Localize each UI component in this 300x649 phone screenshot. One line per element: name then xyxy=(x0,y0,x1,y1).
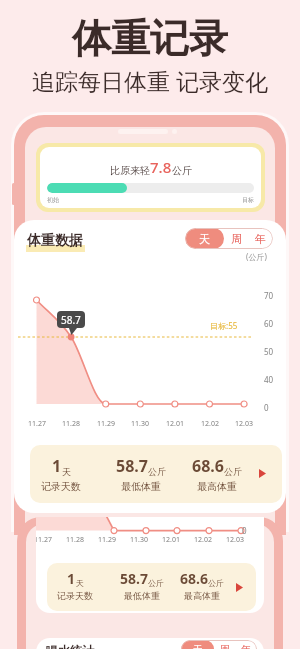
staticText: 天 xyxy=(76,578,84,588)
staticText: 11.28 xyxy=(66,535,84,545)
staticText: 公斤 xyxy=(208,578,224,588)
staticText: 体重数据 xyxy=(27,232,83,250)
staticText: 11.30 xyxy=(131,419,149,429)
staticText: 周 xyxy=(220,643,230,649)
staticText: 年 xyxy=(255,232,266,246)
staticText: 公斤 xyxy=(172,164,192,177)
staticText: 11.29 xyxy=(97,419,115,429)
staticText: 70 xyxy=(264,290,274,301)
staticText: 50 xyxy=(264,346,274,357)
button[interactable]: 年 xyxy=(235,640,256,649)
staticText: 40 xyxy=(264,374,274,385)
staticText: 11.30 xyxy=(130,535,148,545)
staticText: 天 xyxy=(193,643,203,649)
staticText: 12.01 xyxy=(162,535,180,545)
staticText: 11.29 xyxy=(98,535,116,545)
staticText: 天 xyxy=(62,466,71,477)
staticText: 周 xyxy=(231,232,242,246)
staticText: 最低体重 xyxy=(121,480,161,493)
button[interactable]: 周 xyxy=(214,640,235,649)
staticText: 11.27 xyxy=(28,419,46,429)
staticText: 初始 xyxy=(47,196,59,204)
staticText: 追踪每日体重 记录变化 xyxy=(0,65,300,96)
staticText: 60 xyxy=(264,318,274,329)
staticText: 0 xyxy=(264,402,269,413)
staticText: 7.8 xyxy=(150,157,172,177)
staticText: 最高体重 xyxy=(184,590,220,601)
staticText: 68.6 xyxy=(180,569,208,588)
button[interactable]: 1 xyxy=(30,445,282,503)
button[interactable]: 天 xyxy=(181,640,214,649)
staticText: 12.02 xyxy=(201,419,219,429)
staticText: (公斤) xyxy=(246,251,267,262)
staticText: 11.28 xyxy=(62,419,80,429)
button[interactable]: 天 xyxy=(185,228,224,249)
staticText: 公斤 xyxy=(148,578,164,588)
staticText: 12.03 xyxy=(226,535,244,545)
staticText: 公斤 xyxy=(148,466,166,477)
staticText: 体重记录 xyxy=(0,14,300,63)
staticText: 58.7 xyxy=(120,569,148,588)
staticText: 最低体重 xyxy=(124,590,160,601)
staticText: 11.27 xyxy=(36,535,52,545)
staticText: 12.01 xyxy=(166,419,184,429)
staticText: 58.7 xyxy=(61,313,81,327)
staticText: 12.02 xyxy=(194,535,212,545)
button[interactable]: 1 xyxy=(47,563,256,611)
staticText: 天 xyxy=(199,232,210,246)
staticText: 目标 xyxy=(242,196,254,204)
staticText: 记录天数 xyxy=(57,590,93,601)
staticText: 1 xyxy=(67,569,76,588)
staticText: 12.03 xyxy=(235,419,253,429)
staticText: 0 xyxy=(242,525,247,536)
button[interactable]: 年 xyxy=(248,228,273,249)
staticText: 喝水统计 xyxy=(46,643,94,649)
button[interactable]: 周 xyxy=(224,228,248,249)
staticText: 公斤 xyxy=(224,466,242,477)
staticText: 年 xyxy=(241,643,251,649)
staticText: 68.6 xyxy=(192,455,224,477)
staticText: 目标:55 xyxy=(210,320,238,331)
staticText: 58.7 xyxy=(116,455,148,477)
staticText: 1 xyxy=(52,455,62,477)
staticText: 记录天数 xyxy=(41,480,81,493)
staticText: 最高体重 xyxy=(197,480,237,493)
staticText: 比原来轻 xyxy=(110,164,150,177)
